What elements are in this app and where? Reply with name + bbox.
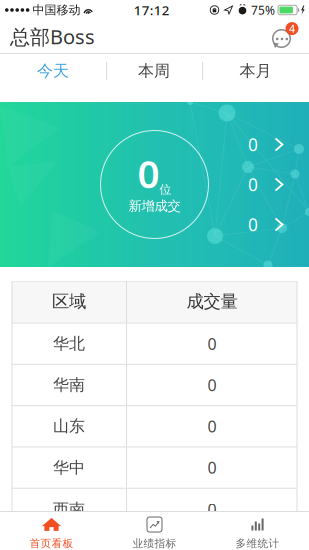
staticText: 今天	[37, 61, 69, 81]
staticText: 0	[207, 374, 216, 396]
staticText: 本月	[239, 61, 271, 81]
button[interactable]: 业绩指标	[103, 512, 206, 550]
staticText: 多维统计	[235, 537, 279, 550]
button[interactable]: 首页看板	[0, 512, 103, 550]
staticText: 华北	[53, 334, 85, 353]
staticText: 首页看板	[29, 537, 73, 550]
staticText: 山东	[53, 416, 85, 436]
staticText: 0	[137, 148, 159, 199]
staticText: 0	[248, 173, 258, 196]
staticText: 成交量	[186, 291, 237, 312]
staticText: 中国移动	[32, 3, 80, 17]
staticText: 华南	[53, 375, 85, 395]
button[interactable]: 本月	[202, 54, 309, 88]
staticText: 位	[159, 182, 171, 197]
staticText: 75%	[251, 2, 275, 18]
button[interactable]: 多维统计	[206, 512, 309, 550]
staticText: 业绩指标	[132, 537, 176, 550]
staticText: 本周	[138, 61, 170, 81]
button[interactable]: 0	[245, 175, 287, 193]
button[interactable]: Messages	[269, 20, 299, 52]
staticText: 0	[207, 333, 216, 354]
staticText: 4	[289, 21, 295, 36]
staticText: 0	[248, 133, 258, 156]
staticText: 0	[207, 499, 216, 520]
staticText: 0	[207, 416, 216, 437]
staticText: 17:12	[134, 1, 170, 19]
staticText: 华中	[53, 458, 85, 477]
button[interactable]: 0	[245, 215, 287, 233]
button[interactable]: 今天	[0, 54, 106, 88]
staticText: 0	[248, 213, 258, 236]
staticText: 西南	[53, 499, 85, 519]
staticText: 区域	[52, 291, 86, 312]
staticText: 新增成交	[128, 198, 180, 214]
staticText: 总部Boss	[10, 23, 95, 50]
staticText: 0	[207, 457, 216, 478]
button[interactable]: 0	[245, 135, 287, 153]
button[interactable]: 本周	[106, 54, 202, 88]
